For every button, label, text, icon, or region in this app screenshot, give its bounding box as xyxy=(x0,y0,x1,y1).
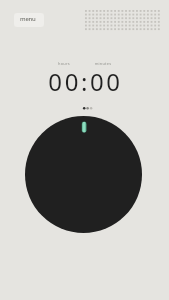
staticText: hours xyxy=(44,61,84,66)
staticText: menu xyxy=(20,15,36,23)
staticText: minutes xyxy=(83,61,123,66)
button[interactable]: menu xyxy=(14,13,44,27)
button[interactable]: Timer dial xyxy=(25,116,142,233)
staticText: 00:00 xyxy=(1,65,169,300)
